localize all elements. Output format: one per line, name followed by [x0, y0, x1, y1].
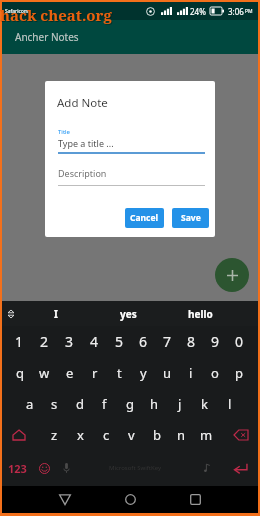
staticText: 9: [211, 332, 220, 351]
button[interactable]: i: [179, 357, 203, 388]
staticText: 24%: [190, 6, 206, 17]
button[interactable]: g: [117, 388, 142, 419]
button[interactable]: 0: [227, 326, 251, 357]
staticText: w: [39, 364, 50, 382]
button[interactable]: Home: [110, 486, 150, 513]
staticText: x: [77, 426, 84, 444]
staticText: h: [150, 395, 159, 413]
staticText: yes: [120, 307, 137, 321]
button[interactable]: e: [57, 357, 82, 388]
button[interactable]: l: [217, 388, 242, 419]
staticText: hello: [188, 307, 213, 321]
button[interactable]: Back: [45, 486, 85, 513]
staticText: r: [92, 364, 98, 382]
button[interactable]: y: [131, 357, 155, 388]
button[interactable]: j: [167, 388, 192, 419]
staticText: e: [66, 364, 74, 382]
button[interactable]: m: [194, 419, 219, 450]
button[interactable]: Cancel: [125, 208, 164, 228]
staticText: s: [51, 395, 58, 413]
button[interactable]: w: [32, 357, 57, 388]
button[interactable]: r: [82, 357, 107, 388]
button[interactable]: v: [119, 419, 144, 450]
button[interactable]: More suggestions: [2, 301, 20, 326]
button[interactable]: 7: [155, 326, 179, 357]
button[interactable]: hello: [164, 301, 236, 326]
button[interactable]: Shift: [2, 419, 36, 450]
staticText: 4: [90, 332, 99, 351]
button[interactable]: h: [142, 388, 167, 419]
button[interactable]: c: [93, 419, 119, 450]
button[interactable]: o: [203, 357, 227, 388]
staticText: 7: [163, 332, 172, 351]
button[interactable]: I: [20, 301, 92, 326]
staticText: b: [153, 426, 161, 444]
button[interactable]: Backspace: [224, 419, 258, 450]
button[interactable]: 9: [203, 326, 227, 357]
staticText: Ancher Notes: [15, 30, 79, 44]
button[interactable]: 4: [82, 326, 107, 357]
button[interactable]: Voice input: [55, 450, 77, 486]
button[interactable]: 1: [7, 326, 32, 357]
staticText: Save: [181, 212, 201, 224]
button[interactable]: 3: [57, 326, 82, 357]
staticText: a: [26, 395, 34, 413]
staticText: hack cheat.org: [1, 6, 113, 26]
button[interactable]: Save: [172, 208, 209, 228]
staticText: Description: [58, 167, 107, 179]
staticText: m: [200, 426, 213, 444]
button[interactable]: x: [67, 419, 93, 450]
button[interactable]: k: [192, 388, 217, 419]
staticText: 123: [8, 461, 27, 476]
button[interactable]: 6: [131, 326, 155, 357]
button[interactable]: p: [227, 357, 251, 388]
button[interactable]: a: [18, 388, 42, 419]
button[interactable]: s: [42, 388, 67, 419]
staticText: i: [189, 364, 193, 382]
staticText: g: [126, 395, 134, 413]
staticText: 3:06: [228, 6, 244, 17]
staticText: 8: [187, 332, 196, 351]
staticText: Cancel: [130, 212, 159, 224]
staticText: j: [178, 395, 182, 413]
staticText: v: [128, 426, 135, 444]
staticText: 1: [15, 332, 24, 351]
button[interactable]: f: [92, 388, 117, 419]
staticText: 2: [40, 332, 49, 351]
staticText: d: [76, 395, 84, 413]
staticText: 3: [65, 332, 74, 351]
staticText: Microsoft SwiftKey: [109, 464, 161, 472]
button[interactable]: 2: [32, 326, 57, 357]
staticText: z: [51, 426, 58, 444]
button[interactable]: yes: [92, 301, 164, 326]
staticText: Safaricom: [5, 8, 29, 15]
button[interactable]: z: [41, 419, 67, 450]
staticText: t: [117, 364, 122, 382]
button[interactable]: 8: [179, 326, 203, 357]
button[interactable]: n: [169, 419, 194, 450]
button[interactable]: d: [67, 388, 92, 419]
button[interactable]: 123: [2, 450, 33, 486]
staticText: u: [163, 364, 172, 382]
staticText: p: [235, 364, 243, 382]
staticText: Type a title ...: [58, 137, 114, 149]
staticText: Title: [58, 128, 70, 136]
staticText: 5: [115, 332, 124, 351]
staticText: Add Note: [57, 95, 108, 111]
button[interactable]: u: [155, 357, 179, 388]
staticText: 6: [139, 332, 148, 351]
button[interactable]: 5: [107, 326, 131, 357]
button[interactable]: Sticker: [192, 450, 222, 486]
button[interactable]: q: [7, 357, 32, 388]
button[interactable]: b: [144, 419, 169, 450]
staticText: l: [228, 395, 232, 413]
staticText: hack cheat.org: [0, 5, 112, 25]
button[interactable]: Recent apps: [175, 486, 215, 513]
button[interactable]: t: [107, 357, 131, 388]
button[interactable]: Emoji: [33, 450, 55, 486]
staticText: o: [211, 364, 219, 382]
staticText: y: [140, 364, 147, 382]
button[interactable]: Enter: [222, 450, 258, 486]
button[interactable]: Add note: [215, 258, 249, 292]
